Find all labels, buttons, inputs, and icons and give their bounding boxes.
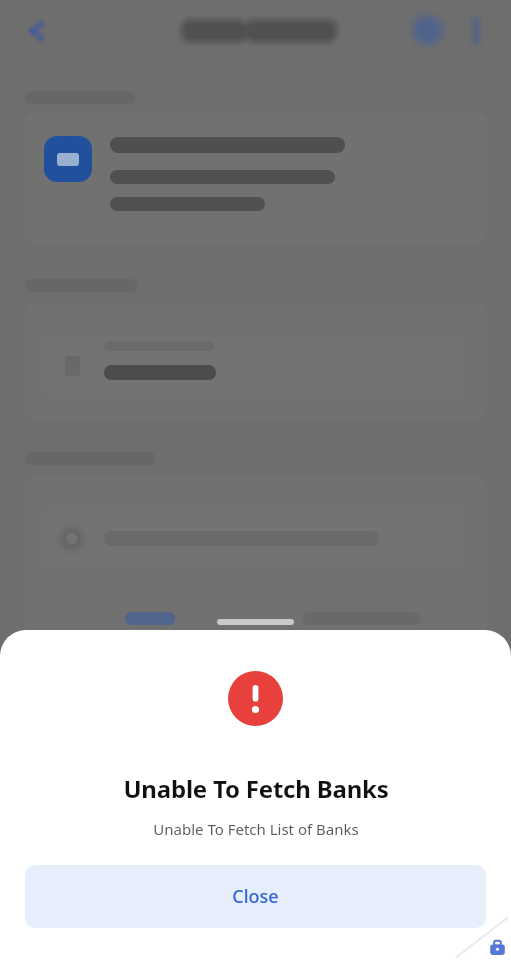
button[interactable]: Help <box>411 14 444 47</box>
button[interactable] <box>24 113 487 244</box>
button[interactable]: Back <box>18 14 54 48</box>
button[interactable] <box>47 511 464 568</box>
button[interactable] <box>47 337 464 394</box>
button[interactable]: Close <box>25 865 486 928</box>
staticText: Close <box>232 884 279 909</box>
other: Work profile <box>489 939 506 956</box>
button[interactable]: More options <box>460 14 492 47</box>
staticText: Unable To Fetch List of Banks <box>153 819 359 839</box>
staticText: Unable To Fetch Banks <box>123 772 389 805</box>
